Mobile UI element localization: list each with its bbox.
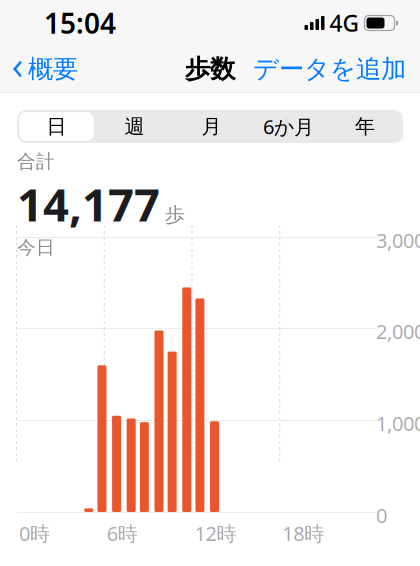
staticText: 2,000 — [376, 318, 420, 345]
staticText: 1,000 — [376, 410, 420, 437]
staticText: 合計 — [17, 150, 55, 173]
staticText: 3,000 — [376, 227, 420, 254]
button[interactable]: 月 — [173, 110, 250, 143]
staticText: 日 — [46, 114, 66, 139]
staticText: 6時 — [107, 520, 138, 547]
staticText: 15:04 — [44, 4, 116, 42]
staticText: データを追加 — [253, 53, 406, 84]
button[interactable]: 6か月 — [250, 110, 327, 143]
button[interactable]: 年 — [327, 110, 403, 143]
button[interactable]: 週 — [96, 110, 173, 143]
staticText: 4G — [329, 8, 358, 38]
staticText: 12時 — [194, 520, 236, 547]
staticText: 0 — [376, 502, 387, 529]
staticText: 今日 — [17, 236, 55, 259]
button[interactable]: 概要 — [0, 47, 78, 90]
staticText: 14,177 — [17, 174, 160, 234]
staticText: 週 — [124, 114, 144, 139]
staticText: 年 — [355, 114, 375, 139]
staticText: 歩数 — [185, 53, 235, 84]
staticText: 18時 — [282, 520, 324, 547]
staticText: 0時 — [19, 520, 50, 547]
staticText: 6か月 — [263, 113, 314, 140]
button[interactable]: データを追加 — [253, 47, 420, 90]
staticText: 月 — [201, 114, 221, 139]
staticText: 概要 — [28, 53, 78, 84]
button[interactable]: 日 — [17, 110, 96, 143]
staticText: 歩 — [165, 203, 185, 227]
